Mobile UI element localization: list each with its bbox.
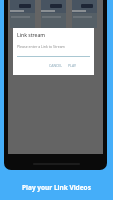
staticText: Link stream — [17, 32, 46, 39]
staticText: Please enter a Link to Stream — [17, 44, 65, 49]
staticText: PLAY — [68, 63, 76, 68]
staticText: CANCEL — [49, 63, 63, 68]
staticText: Play your Link Videos — [22, 183, 91, 192]
button[interactable] — [41, 0, 66, 28]
button[interactable]: PLAY — [67, 63, 77, 68]
button[interactable] — [72, 0, 97, 28]
button[interactable]: CANCEL — [48, 63, 64, 68]
button[interactable] — [10, 0, 35, 28]
